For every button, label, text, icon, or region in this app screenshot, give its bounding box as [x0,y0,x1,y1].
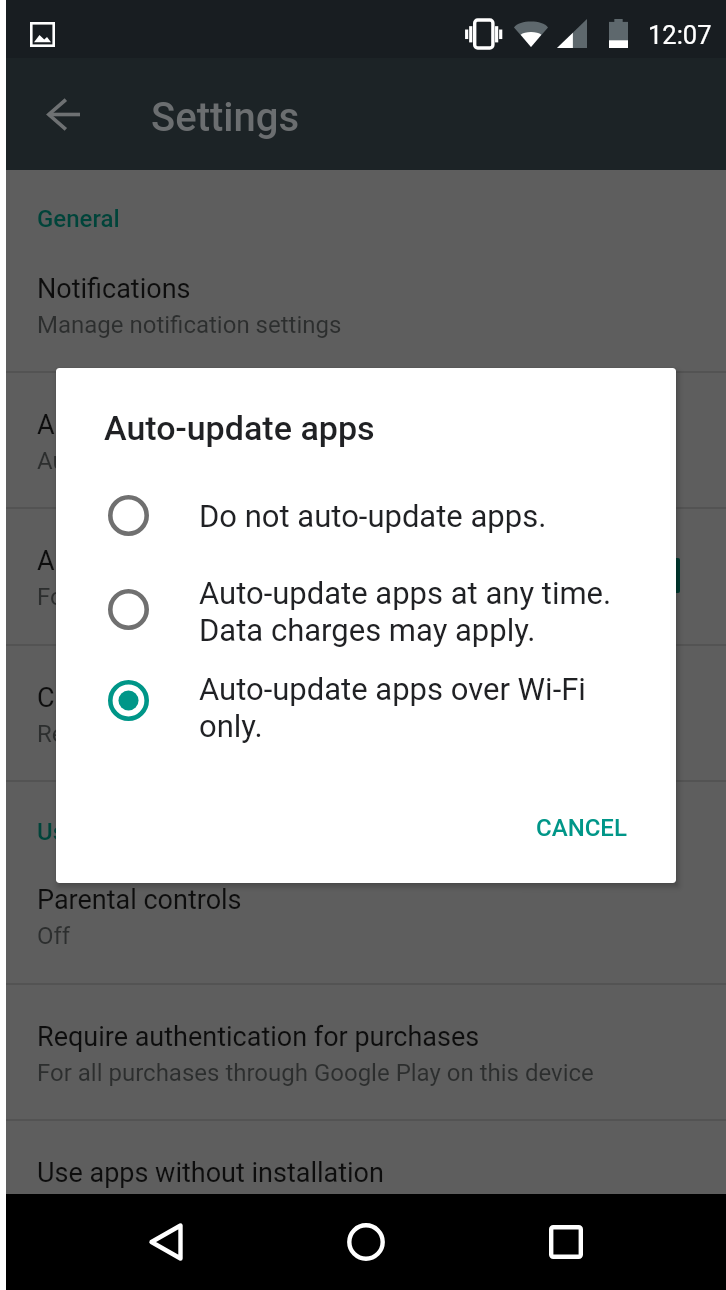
button[interactable]: Do not auto-update apps. [56,477,676,553]
button[interactable]: Clear local search history [6,644,726,780]
staticText: Auto-update apps [104,408,375,448]
staticText: Auto-update apps [37,409,250,441]
staticText: Do not auto-update apps. [199,498,547,535]
staticText: General [37,205,120,233]
button[interactable]: General [6,189,726,249]
staticText: Auto-add widgets [37,545,247,577]
staticText: Clear local search history [37,682,340,714]
button[interactable]: Auto-update apps at any time. Data charg… [56,553,676,653]
button[interactable]: Auto-update apps [6,371,726,507]
button[interactable]: Notifications [6,235,726,371]
button[interactable]: Home [318,1194,414,1290]
button[interactable]: Require authentication for purchases [6,983,726,1119]
button[interactable]: Auto-add widgets [6,507,726,643]
staticText: Remove the searches you have performed [37,720,485,748]
staticText: Auto-update apps at any time. Data charg… [199,575,612,649]
staticText: For new apps [37,583,181,611]
button[interactable]: CANCEL [510,795,653,861]
button[interactable]: Parental controls [6,846,726,982]
staticText: Notifications [37,273,191,305]
staticText: Manage notification settings [37,311,342,339]
button[interactable]: Use apps without installation [6,1119,726,1255]
staticText: Use apps without installation [37,1157,384,1189]
button[interactable]: Navigate up [13,64,113,164]
staticText: 12:07 [648,20,712,50]
staticText: Parental controls [37,884,242,916]
staticText: User controls [37,818,181,846]
button[interactable]: Back [118,1194,214,1290]
staticText: CANCEL [536,814,627,842]
staticText: For all purchases through Google Play on… [37,1059,594,1087]
button[interactable]: User controls [6,802,726,862]
staticText: Require authentication for purchases [37,1021,480,1053]
staticText: Auto-update apps over Wi-Fi only. [199,671,586,745]
button[interactable]: Auto-update apps over Wi-Fi only. [56,653,676,753]
staticText: Auto-update apps over Wi-Fi only [37,447,387,475]
button[interactable]: Recent apps [518,1194,614,1290]
staticText: Settings [151,94,300,141]
staticText: Off [37,922,71,950]
